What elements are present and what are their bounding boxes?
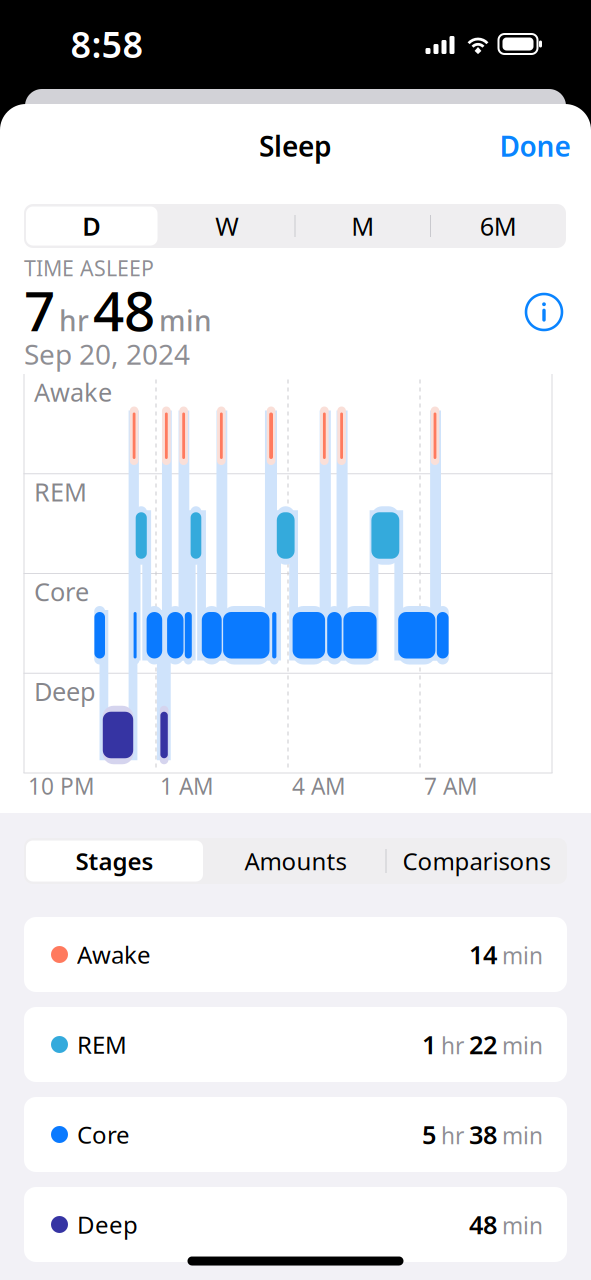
button[interactable]: W: [159, 204, 295, 248]
button[interactable]: M: [295, 204, 430, 248]
staticText: 8:58: [70, 20, 143, 68]
staticText: Deep: [34, 674, 96, 708]
button[interactable]: D: [24, 204, 159, 248]
staticText: Core: [34, 575, 89, 608]
staticText: 48: [469, 1208, 497, 1241]
staticText: Done: [499, 127, 570, 165]
staticText: 7: [24, 274, 55, 346]
staticText: Sleep: [259, 127, 332, 165]
button[interactable]: About sleep stages: [522, 290, 566, 334]
button[interactable]: Amounts: [205, 838, 386, 884]
staticText: hr: [441, 1120, 464, 1151]
staticText: W: [215, 209, 239, 243]
staticText: 22: [469, 1028, 497, 1061]
staticText: M: [351, 209, 374, 243]
staticText: min: [502, 1120, 543, 1151]
button[interactable]: Awake: [24, 917, 567, 992]
staticText: Amounts: [244, 845, 346, 877]
staticText: 5: [422, 1118, 436, 1151]
staticText: Comparisons: [402, 845, 550, 877]
button[interactable]: 6M: [430, 204, 566, 248]
staticText: 1: [422, 1028, 436, 1061]
staticText: Sep 20, 2024: [24, 335, 190, 373]
staticText: 1 AM: [160, 771, 214, 801]
staticText: Awake: [77, 939, 151, 970]
staticText: min: [159, 302, 212, 339]
button[interactable]: Core: [24, 1097, 567, 1172]
staticText: 48: [93, 274, 155, 346]
button[interactable]: Deep: [24, 1187, 567, 1262]
staticText: min: [502, 1030, 543, 1061]
button[interactable]: Done: [480, 120, 590, 172]
staticText: hr: [441, 1030, 464, 1061]
staticText: 7 AM: [424, 771, 478, 801]
staticText: Awake: [34, 375, 112, 409]
staticText: D: [82, 209, 101, 243]
button[interactable]: REM: [24, 1007, 567, 1082]
staticText: 38: [469, 1118, 497, 1151]
staticText: Core: [77, 1119, 130, 1150]
staticText: 14: [469, 938, 497, 971]
staticText: 6M: [480, 209, 517, 243]
staticText: Stages: [75, 845, 153, 877]
button[interactable]: Comparisons: [386, 838, 567, 884]
staticText: 4 AM: [292, 771, 346, 801]
staticText: REM: [34, 475, 87, 508]
staticText: hr: [59, 302, 89, 339]
staticText: 10 PM: [28, 771, 95, 801]
staticText: min: [502, 940, 543, 971]
staticText: REM: [77, 1029, 127, 1060]
button[interactable]: Stages: [24, 838, 205, 884]
staticText: TIME ASLEEP: [24, 254, 154, 282]
staticText: min: [502, 1210, 543, 1241]
staticText: Deep: [77, 1209, 138, 1240]
